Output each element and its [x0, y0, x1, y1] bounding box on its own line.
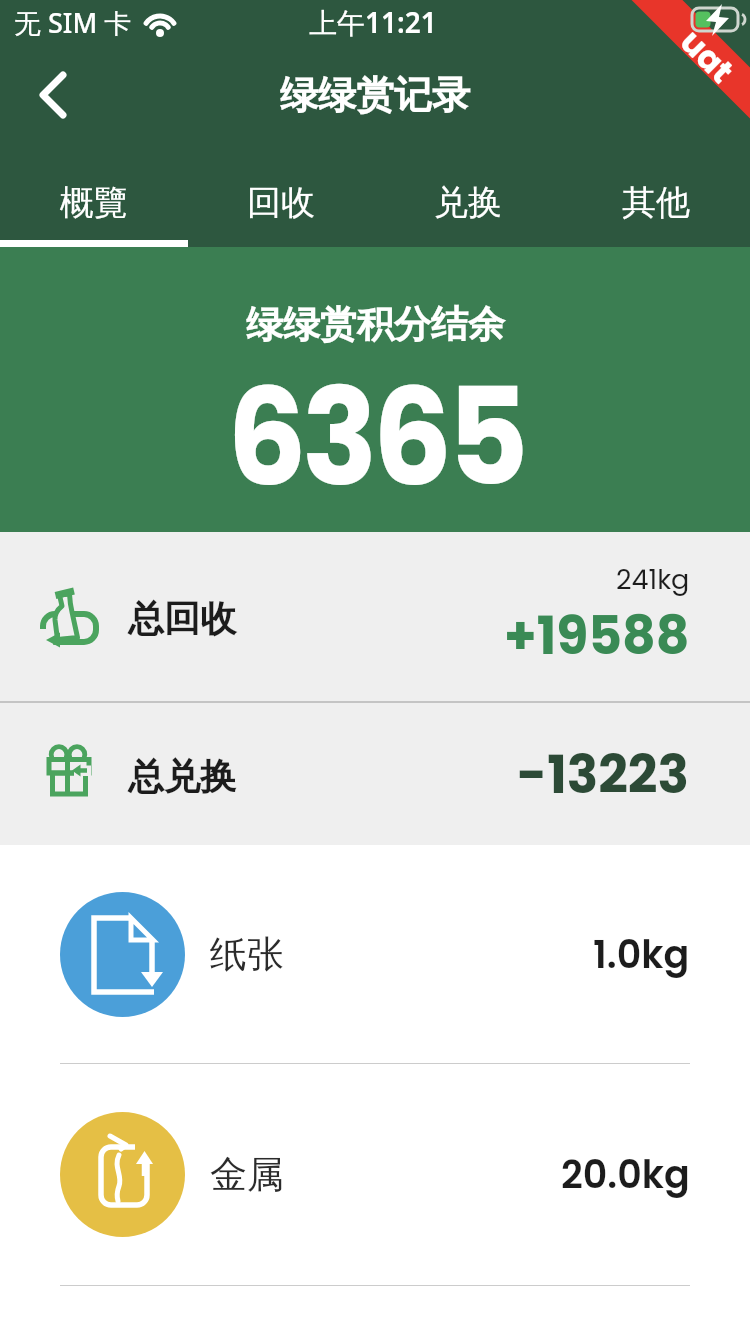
staticText: 兑换: [434, 181, 502, 224]
staticText: 绿绿赏记录: [280, 71, 470, 119]
staticText: 上午11:21: [309, 3, 437, 41]
staticText: 6365: [227, 343, 524, 527]
button[interactable]: 总回收: [0, 532, 750, 701]
staticText: 回收: [247, 181, 315, 224]
button[interactable]: 金属: [0, 1064, 750, 1285]
button[interactable]: 纸张: [0, 845, 750, 1063]
staticText: 无 SIM 卡: [14, 4, 132, 41]
button[interactable]: [26, 67, 82, 123]
staticText: +19588: [504, 599, 690, 672]
button[interactable]: 兑换: [374, 145, 562, 247]
staticText: 其他: [622, 181, 690, 224]
staticText: 总兑换: [128, 754, 236, 799]
staticText: 纸张: [210, 931, 284, 978]
staticText: 概覽: [60, 181, 128, 224]
button[interactable]: 概覽: [0, 145, 187, 247]
staticText: -13223: [517, 738, 690, 811]
button[interactable]: 总兑换: [0, 703, 750, 845]
staticText: uat: [677, 19, 745, 86]
staticText: 20.0kg: [561, 1148, 690, 1201]
staticText: 绿绿赏积分结余: [246, 301, 505, 348]
staticText: 241kg: [616, 561, 690, 599]
staticText: 1.0kg: [593, 928, 690, 981]
button[interactable]: 回收: [187, 145, 374, 247]
staticText: 总回收: [128, 596, 236, 641]
button[interactable]: 其他: [562, 145, 750, 247]
staticText: 金属: [210, 1151, 284, 1198]
